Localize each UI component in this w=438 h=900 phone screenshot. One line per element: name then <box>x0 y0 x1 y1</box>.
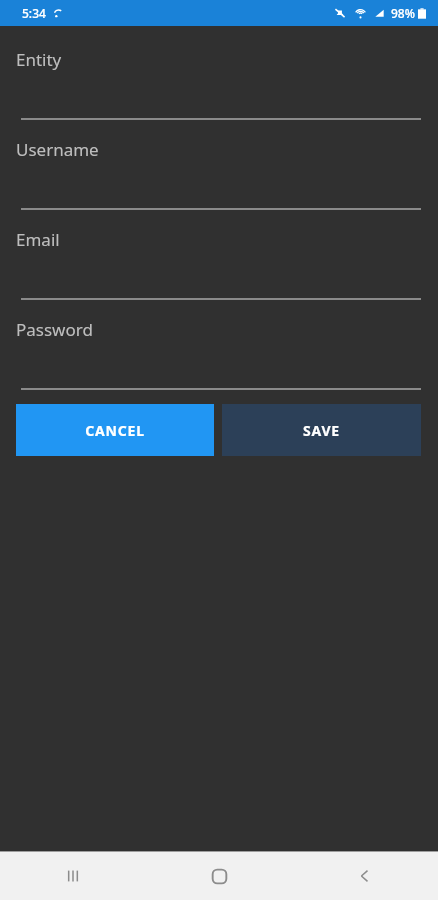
staticText: CANCEL <box>85 421 145 440</box>
button[interactable]: CANCEL <box>16 404 214 456</box>
staticText: 5:34 <box>22 5 46 21</box>
button[interactable]: Home <box>146 852 292 900</box>
button[interactable]: SAVE <box>222 404 421 456</box>
staticText: Entity <box>16 48 62 71</box>
button[interactable]: Back <box>292 852 438 900</box>
staticText: Email <box>16 228 60 251</box>
staticText: SAVE <box>303 421 340 440</box>
staticText: Username <box>16 138 99 161</box>
staticText: Password <box>16 318 93 341</box>
button[interactable]: Recent apps <box>0 852 146 900</box>
staticText: 98% <box>391 5 415 21</box>
